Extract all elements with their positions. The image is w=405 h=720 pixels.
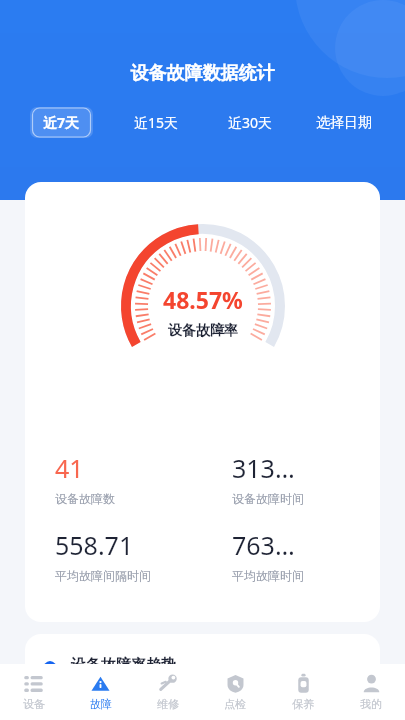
staticText: 维修 bbox=[157, 697, 179, 711]
staticText: 设备故障率 bbox=[168, 322, 238, 340]
staticText: 我的 bbox=[360, 697, 382, 711]
button[interactable]: 保养 bbox=[269, 664, 337, 720]
staticText: 41 bbox=[55, 451, 84, 485]
staticText: 558.71 bbox=[55, 528, 134, 562]
button[interactable]: 近7天 bbox=[14, 107, 109, 138]
staticText: 设备故障时间 bbox=[232, 491, 304, 506]
button[interactable]: 维修 bbox=[134, 664, 201, 720]
button[interactable]: 近15天 bbox=[109, 107, 203, 138]
staticText: 设备故障数据统计 bbox=[0, 62, 405, 85]
button[interactable]: 我的 bbox=[337, 664, 405, 720]
staticText: 设备故障数 bbox=[55, 491, 115, 506]
staticText: 平均故障间隔时间 bbox=[55, 568, 151, 583]
staticText: 平均故障时间 bbox=[232, 568, 304, 583]
button[interactable]: 设备 bbox=[0, 664, 67, 720]
staticText: 313… bbox=[232, 451, 295, 485]
staticText: 近30天 bbox=[228, 113, 273, 132]
staticText: 点检 bbox=[224, 697, 246, 711]
staticText: 设备故障率趋势 bbox=[71, 656, 176, 675]
button[interactable]: 点检 bbox=[201, 664, 269, 720]
staticText: 近15天 bbox=[134, 113, 179, 132]
staticText: 设备 bbox=[23, 697, 45, 711]
button[interactable]: 选择日期 bbox=[297, 108, 391, 138]
staticText: 故障 bbox=[90, 697, 112, 711]
button[interactable]: 设备故障率趋势 bbox=[25, 634, 380, 720]
staticText: 48.57% bbox=[163, 284, 243, 315]
staticText: 选择日期 bbox=[316, 114, 372, 132]
button[interactable]: 故障 bbox=[67, 664, 134, 720]
staticText: 保养 bbox=[292, 697, 314, 711]
staticText: 763… bbox=[232, 528, 295, 562]
button[interactable]: 48.57% bbox=[25, 182, 380, 622]
staticText: 近7天 bbox=[43, 113, 80, 132]
button[interactable]: 近30天 bbox=[203, 107, 297, 138]
